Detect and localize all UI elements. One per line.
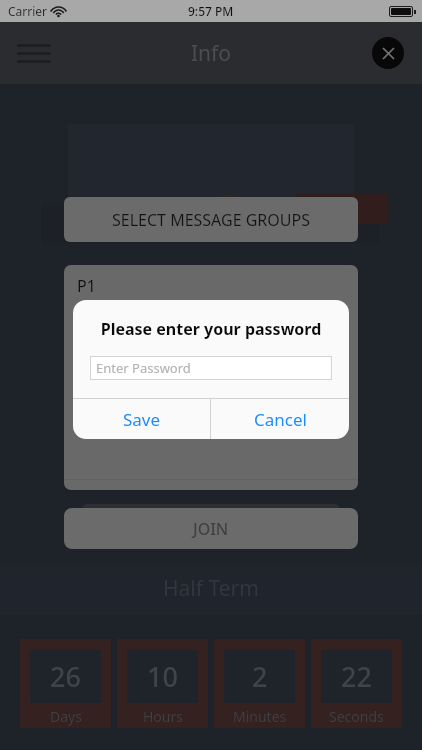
staticText: Seconds [329,707,384,726]
staticText: Carrier [8,3,48,19]
staticText: JOIN [193,518,229,540]
staticText: Please enter your password [73,318,349,340]
staticText: Cancel [254,408,307,431]
staticText: 26 [50,658,81,695]
staticText: Info [191,39,232,68]
staticText: Hours [143,707,183,726]
staticText: Enter Password [96,359,191,377]
staticText: Carrier [8,3,48,19]
button[interactable]: SELECT MESSAGE GROUPS [64,197,358,242]
button[interactable]: Cancel [211,399,349,439]
staticText: 9:57 PM [188,3,234,19]
staticText: Minutes [233,707,287,726]
staticText: Save [123,408,161,431]
staticText: 2 [252,658,268,695]
button[interactable]: P1 [64,265,358,307]
button[interactable]: Save [73,399,210,439]
staticText: Days [50,707,82,726]
staticText: 9:57 PM [188,3,234,19]
staticText: 22 [341,658,372,695]
button[interactable]: JOIN [64,508,358,549]
staticText: SELECT MESSAGE GROUPS [112,209,310,231]
button[interactable]: Menu [10,29,58,77]
button[interactable]: Close [372,37,404,69]
staticText: 10 [147,658,178,695]
staticText: P1 [77,275,96,297]
staticText: Half Term [163,574,259,603]
